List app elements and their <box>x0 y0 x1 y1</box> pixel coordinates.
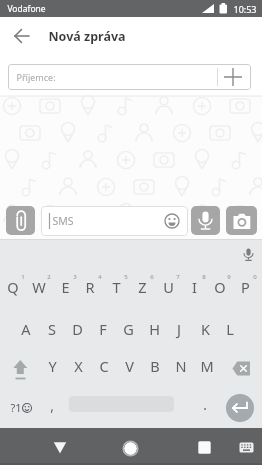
button[interactable]: V <box>116 345 142 387</box>
button[interactable] <box>234 435 259 460</box>
staticText: 8 <box>202 273 206 281</box>
button[interactable]: ?1 <box>4 387 38 427</box>
staticText: F <box>99 319 107 339</box>
staticText: B <box>150 356 160 376</box>
staticText: N <box>175 356 187 376</box>
staticText: 9 <box>227 273 231 281</box>
button[interactable]: L <box>217 308 243 350</box>
staticText: Příjemce: <box>16 71 56 83</box>
staticText: 3 <box>73 273 77 281</box>
button[interactable]: B <box>142 345 168 387</box>
staticText: J <box>177 319 181 339</box>
button[interactable]: A <box>13 308 39 350</box>
button[interactable]: D <box>64 308 90 350</box>
staticText: H <box>149 319 160 339</box>
staticText: 6 <box>150 273 154 281</box>
staticText: U <box>163 277 174 297</box>
button[interactable]: J <box>166 308 192 350</box>
staticText: O <box>214 277 226 297</box>
button[interactable]: C <box>91 345 117 387</box>
staticText: Y <box>48 356 57 376</box>
staticText: I <box>192 277 197 297</box>
staticText: K <box>201 319 210 339</box>
button[interactable]: S <box>39 308 65 350</box>
button[interactable]: Y <box>39 345 65 387</box>
staticText: A <box>21 319 31 339</box>
button[interactable]: , <box>44 393 60 419</box>
button[interactable] <box>8 345 33 387</box>
staticText: E <box>61 277 70 297</box>
staticText: 10:53 <box>233 3 257 15</box>
button[interactable]: F <box>90 308 116 350</box>
button[interactable]: R <box>77 266 103 308</box>
button[interactable] <box>191 206 220 235</box>
button[interactable] <box>224 347 258 389</box>
button[interactable] <box>226 206 257 235</box>
button[interactable] <box>117 435 144 462</box>
staticText: C <box>99 356 109 376</box>
staticText: X <box>74 356 83 376</box>
staticText: 5 <box>124 273 128 281</box>
button[interactable]: U <box>155 266 181 308</box>
button[interactable]: N <box>168 345 194 387</box>
staticText: Z <box>138 277 147 297</box>
button[interactable]: . <box>197 392 213 418</box>
staticText: . <box>203 396 207 414</box>
button[interactable]: I <box>181 266 207 308</box>
button[interactable]: SMS <box>41 206 188 236</box>
button[interactable]: H <box>141 308 167 350</box>
staticText: ?1 <box>10 400 22 415</box>
staticText: Nová zpráva <box>48 28 126 45</box>
button[interactable]: O <box>207 266 233 308</box>
button[interactable]: T <box>103 266 129 308</box>
staticText: , <box>50 397 54 415</box>
button[interactable] <box>46 433 73 460</box>
staticText: V <box>125 356 134 376</box>
button[interactable]: Příjemce: <box>8 64 251 90</box>
button[interactable]: K <box>192 308 218 350</box>
button[interactable] <box>191 434 218 461</box>
button[interactable]: X <box>65 345 91 387</box>
button[interactable]: Q <box>0 266 26 308</box>
staticText: 4 <box>98 273 102 281</box>
button[interactable]: P <box>232 266 258 308</box>
staticText: 7 <box>176 273 180 281</box>
button[interactable] <box>236 243 260 265</box>
button[interactable]: G <box>115 308 141 350</box>
staticText: SMS <box>52 214 74 228</box>
staticText: S <box>48 319 56 339</box>
staticText: Q <box>7 277 19 297</box>
staticText: Vodafone <box>7 3 46 15</box>
staticText: P <box>241 277 250 297</box>
button[interactable]: Z <box>129 266 155 308</box>
staticText: L <box>226 319 234 339</box>
staticText: W <box>32 277 46 297</box>
button[interactable] <box>8 22 36 50</box>
button[interactable]: M <box>194 345 220 387</box>
staticText: 0 <box>253 273 257 281</box>
button[interactable]: W <box>26 266 52 308</box>
staticText: M <box>200 356 214 376</box>
button[interactable] <box>226 394 254 422</box>
button[interactable]: E <box>52 266 78 308</box>
staticText: 2 <box>47 273 51 281</box>
staticText: R <box>85 277 95 297</box>
button[interactable] <box>6 206 35 235</box>
staticText: D <box>72 319 83 339</box>
staticText: G <box>123 319 134 339</box>
staticText: T <box>112 277 121 297</box>
staticText: 1 <box>21 273 25 281</box>
